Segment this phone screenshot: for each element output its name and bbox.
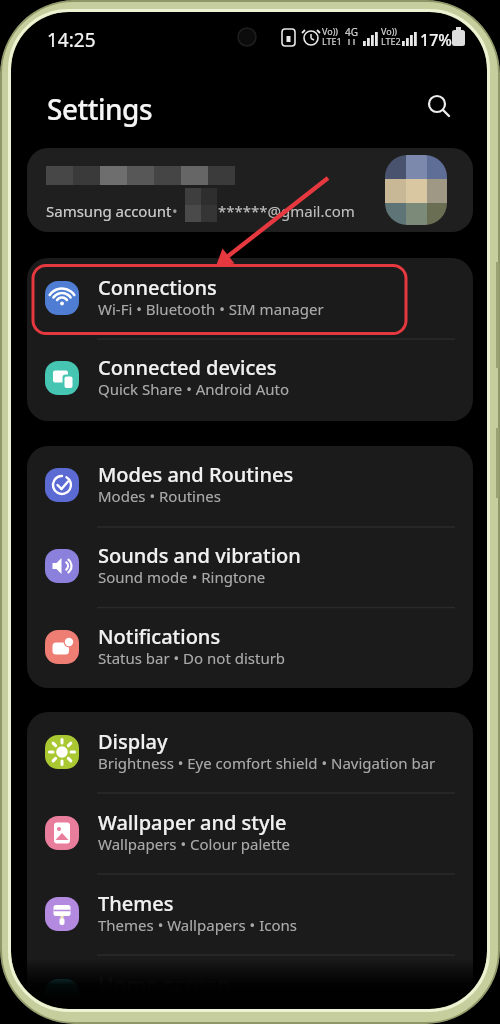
staticText: Quick Share • Android Auto: [98, 379, 290, 399]
staticText: Themes: [98, 890, 174, 917]
staticText: Wallpapers • Colour palette: [98, 834, 291, 854]
staticText: Home screen: [98, 971, 231, 1000]
button[interactable]: [27, 445, 473, 525]
button[interactable]: [27, 258, 473, 338]
staticText: 14:25: [47, 27, 96, 53]
staticText: Wallpaper and style: [98, 809, 287, 836]
staticText: 4G: [345, 25, 358, 39]
staticText: Sounds and vibration: [98, 542, 301, 569]
staticText: Modes • Routines: [98, 486, 221, 506]
staticText: Vo)): [381, 25, 398, 37]
staticText: Brightness • Eye comfort shield • Naviga…: [98, 753, 436, 773]
staticText: Settings: [47, 90, 153, 128]
staticText: Samsung account: [46, 201, 172, 221]
staticText: Themes • Wallpapers • Icons: [98, 915, 297, 935]
button[interactable]: [27, 338, 473, 418]
staticText: Display: [98, 728, 168, 755]
staticText: LTE1: [322, 35, 342, 47]
staticText: LTE2: [381, 35, 401, 47]
staticText: Sound mode • Ringtone: [98, 567, 266, 587]
button[interactable]: [27, 712, 473, 792]
staticText: Status bar • Do not disturb: [98, 648, 286, 668]
staticText: 17%: [420, 29, 452, 51]
staticText: Modes and Routines: [98, 461, 294, 488]
staticText: Notifications: [98, 623, 221, 650]
button[interactable]: [420, 88, 454, 122]
staticText: Connections: [98, 274, 217, 301]
staticText: Wi-Fi • Bluetooth • SIM manager: [98, 299, 324, 319]
button[interactable]: [27, 874, 473, 954]
button[interactable]: [27, 607, 473, 687]
button[interactable]: [27, 526, 473, 606]
staticText: Connected devices: [98, 354, 277, 381]
button[interactable]: [27, 793, 473, 873]
button[interactable]: Samsung account: [27, 148, 473, 232]
staticText: ******@gmail.com: [218, 201, 355, 221]
staticText: •: [172, 201, 178, 221]
staticText: Vo)): [322, 25, 339, 37]
